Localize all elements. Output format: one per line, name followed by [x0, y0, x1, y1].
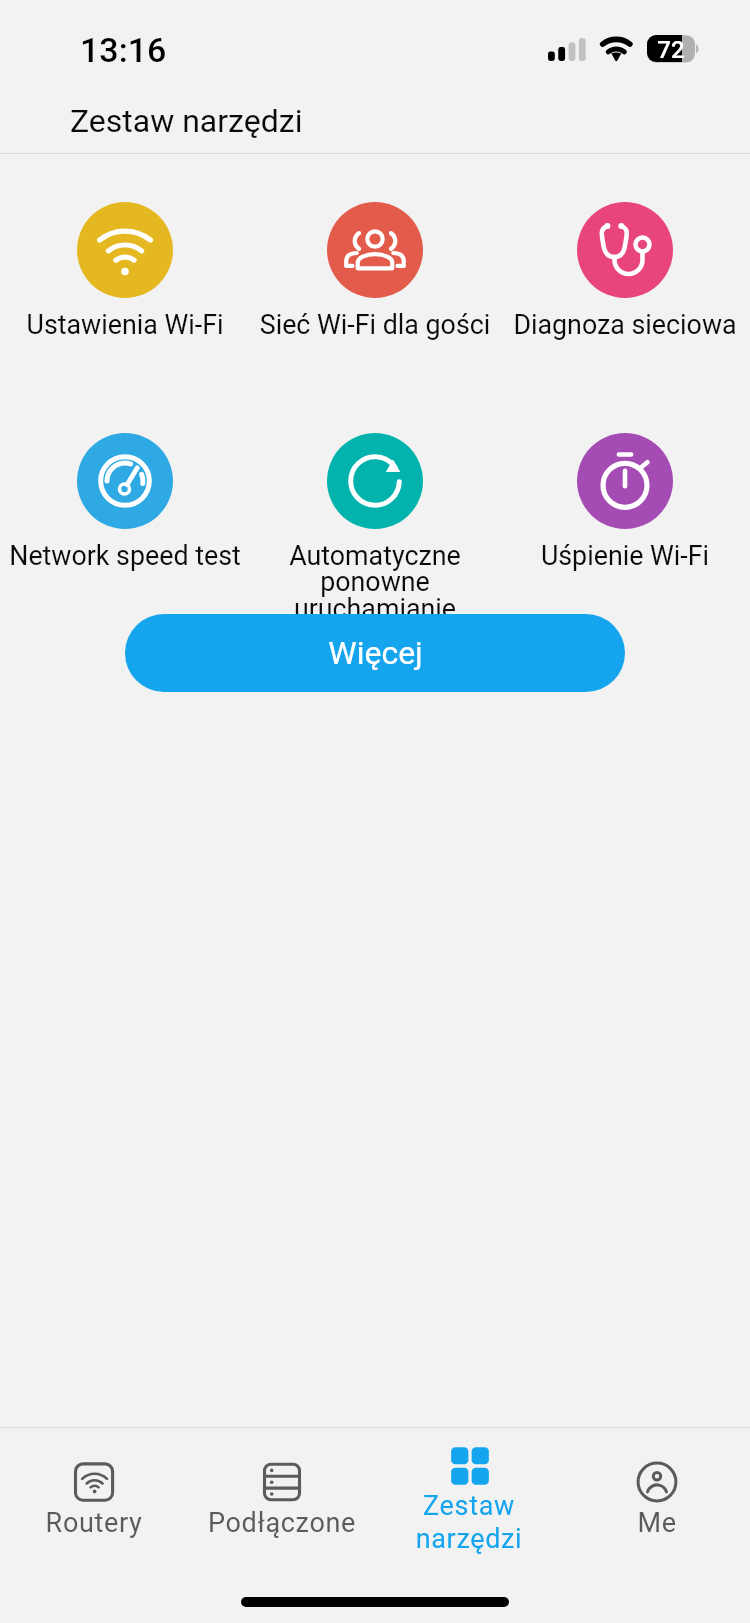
button[interactable]: Zestaw narzędzi [375, 1428, 563, 1575]
staticText: Routery [0, 1507, 188, 1539]
staticText: Więcej [328, 634, 423, 672]
button[interactable]: Więcej [125, 614, 625, 692]
button[interactable]: Diagnoza sieciowa [500, 202, 750, 380]
button[interactable]: Routery [0, 1428, 188, 1575]
staticText: 72 [657, 36, 685, 62]
staticText: 13:16 [80, 30, 280, 70]
staticText: Zestaw narzędzi [70, 102, 570, 140]
button[interactable]: Me [563, 1428, 750, 1575]
button[interactable]: Podłączone [188, 1428, 376, 1575]
button[interactable]: Automatyczne ponowne uruchamianie [250, 433, 500, 611]
button[interactable]: Ustawienia Wi-Fi [0, 202, 250, 380]
staticText: Ustawienia Wi-Fi [0, 309, 250, 340]
staticText: Me [563, 1507, 750, 1539]
button[interactable]: Network speed test [0, 433, 250, 611]
staticText: Podłączone [188, 1507, 376, 1539]
button[interactable]: Uśpienie Wi-Fi [500, 433, 750, 611]
staticText: Sieć Wi-Fi dla gości [250, 309, 500, 340]
staticText: Diagnoza sieciowa [500, 309, 750, 340]
staticText: Network speed test [0, 540, 250, 571]
staticText: Zestaw narzędzi [375, 1490, 563, 1554]
staticText: Uśpienie Wi-Fi [500, 540, 750, 571]
button[interactable]: Sieć Wi-Fi dla gości [250, 202, 500, 380]
staticText: Automatyczne ponowne uruchamianie [250, 540, 500, 625]
